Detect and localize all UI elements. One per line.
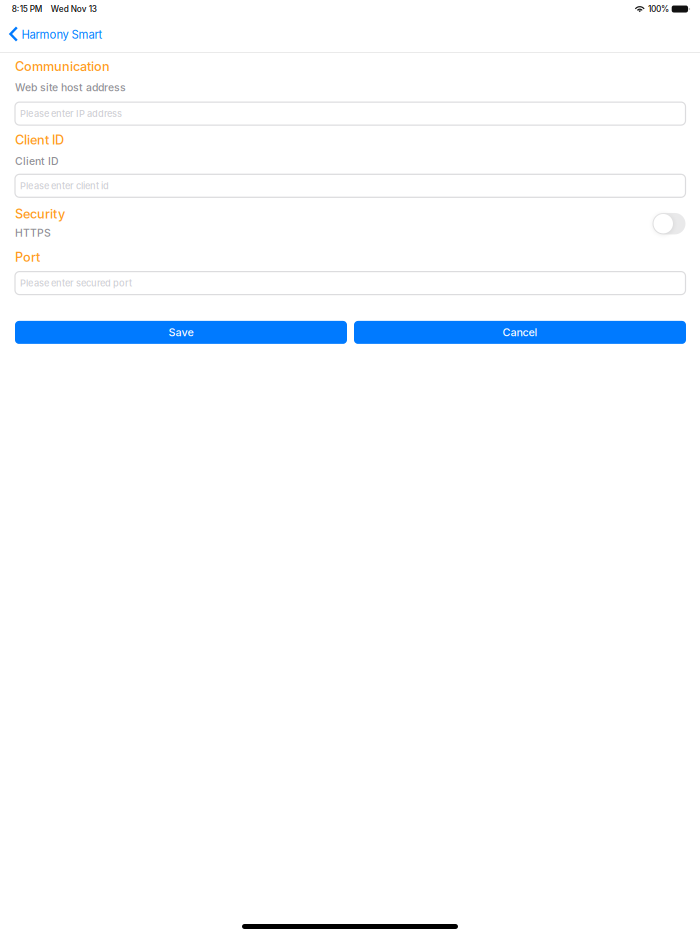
- staticText: 8:15 PM: [12, 4, 43, 14]
- staticText: Wed Nov 13: [43, 4, 97, 14]
- button[interactable]: Harmony Smart: [0, 18, 103, 52]
- button[interactable]: HTTPS: [652, 213, 685, 234]
- button[interactable]: Save: [15, 321, 347, 344]
- button[interactable]: Please enter secured port: [15, 272, 685, 295]
- staticText: Harmony Smart: [22, 28, 103, 41]
- staticText: Please enter client id: [20, 180, 109, 191]
- staticText: Cancel: [502, 326, 537, 339]
- button[interactable]: Please enter client id: [15, 174, 685, 197]
- button[interactable]: Cancel: [354, 321, 686, 344]
- staticText: Client ID: [15, 132, 64, 148]
- button[interactable]: Please enter IP address: [15, 102, 685, 125]
- staticText: 100%: [648, 4, 669, 14]
- staticText: Port: [15, 249, 40, 265]
- staticText: Save: [168, 326, 193, 339]
- staticText: Web site host address: [15, 81, 126, 94]
- staticText: HTTPS: [15, 227, 51, 239]
- staticText: Please enter secured port: [20, 277, 132, 289]
- staticText: Security: [15, 206, 65, 222]
- staticText: Communication: [15, 59, 110, 74]
- staticText: Client ID: [15, 155, 59, 168]
- staticText: Please enter IP address: [20, 108, 122, 119]
